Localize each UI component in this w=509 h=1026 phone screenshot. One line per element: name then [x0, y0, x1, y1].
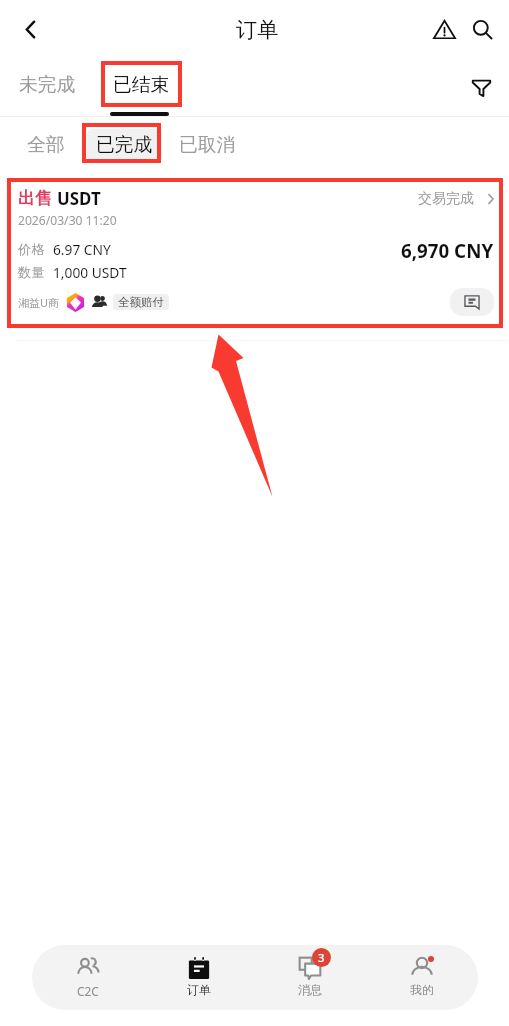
- staticText: USDT: [57, 187, 101, 210]
- button[interactable]: Chat: [450, 288, 494, 316]
- staticText: 订单: [187, 983, 211, 998]
- staticText: 订单: [236, 17, 279, 44]
- button[interactable]: 订单: [143, 945, 254, 1010]
- staticText: 价格: [18, 241, 45, 258]
- button[interactable]: 已结束: [102, 63, 181, 107]
- staticText: 我的: [410, 983, 434, 998]
- staticText: 出售: [18, 188, 52, 209]
- staticText: 全额赔付: [118, 295, 164, 309]
- button[interactable]: 已取消: [170, 125, 245, 165]
- button[interactable]: C2C: [32, 945, 143, 1010]
- button[interactable]: 已完成: [87, 129, 162, 161]
- staticText: 2026/03/30 11:20: [18, 212, 117, 229]
- staticText: 6,970 CNY: [401, 238, 494, 264]
- staticText: 数量: [18, 264, 45, 281]
- staticText: 1,000 USDT: [53, 263, 127, 282]
- button[interactable]: Alerts: [425, 10, 464, 49]
- button[interactable]: Filter: [462, 68, 500, 106]
- button[interactable]: Back: [8, 7, 53, 52]
- staticText: 湘益U商: [18, 295, 60, 310]
- staticText: 交易完成: [418, 190, 474, 208]
- staticText: 全部: [27, 133, 65, 157]
- button[interactable]: Search: [464, 10, 503, 49]
- button[interactable]: 3: [254, 945, 366, 1010]
- staticText: 消息: [298, 983, 322, 998]
- button[interactable]: 未完成: [8, 63, 87, 107]
- staticText: 已完成: [96, 133, 153, 157]
- staticText: 已取消: [179, 133, 236, 157]
- staticText: 已结束: [113, 73, 170, 97]
- button[interactable]: 出售: [0, 173, 509, 341]
- button[interactable]: 全部: [18, 125, 74, 165]
- staticText: 3: [318, 950, 325, 965]
- staticText: 6.97 CNY: [53, 240, 111, 259]
- staticText: 未完成: [19, 73, 76, 97]
- staticText: C2C: [77, 983, 99, 999]
- button[interactable]: 我的: [366, 945, 478, 1010]
